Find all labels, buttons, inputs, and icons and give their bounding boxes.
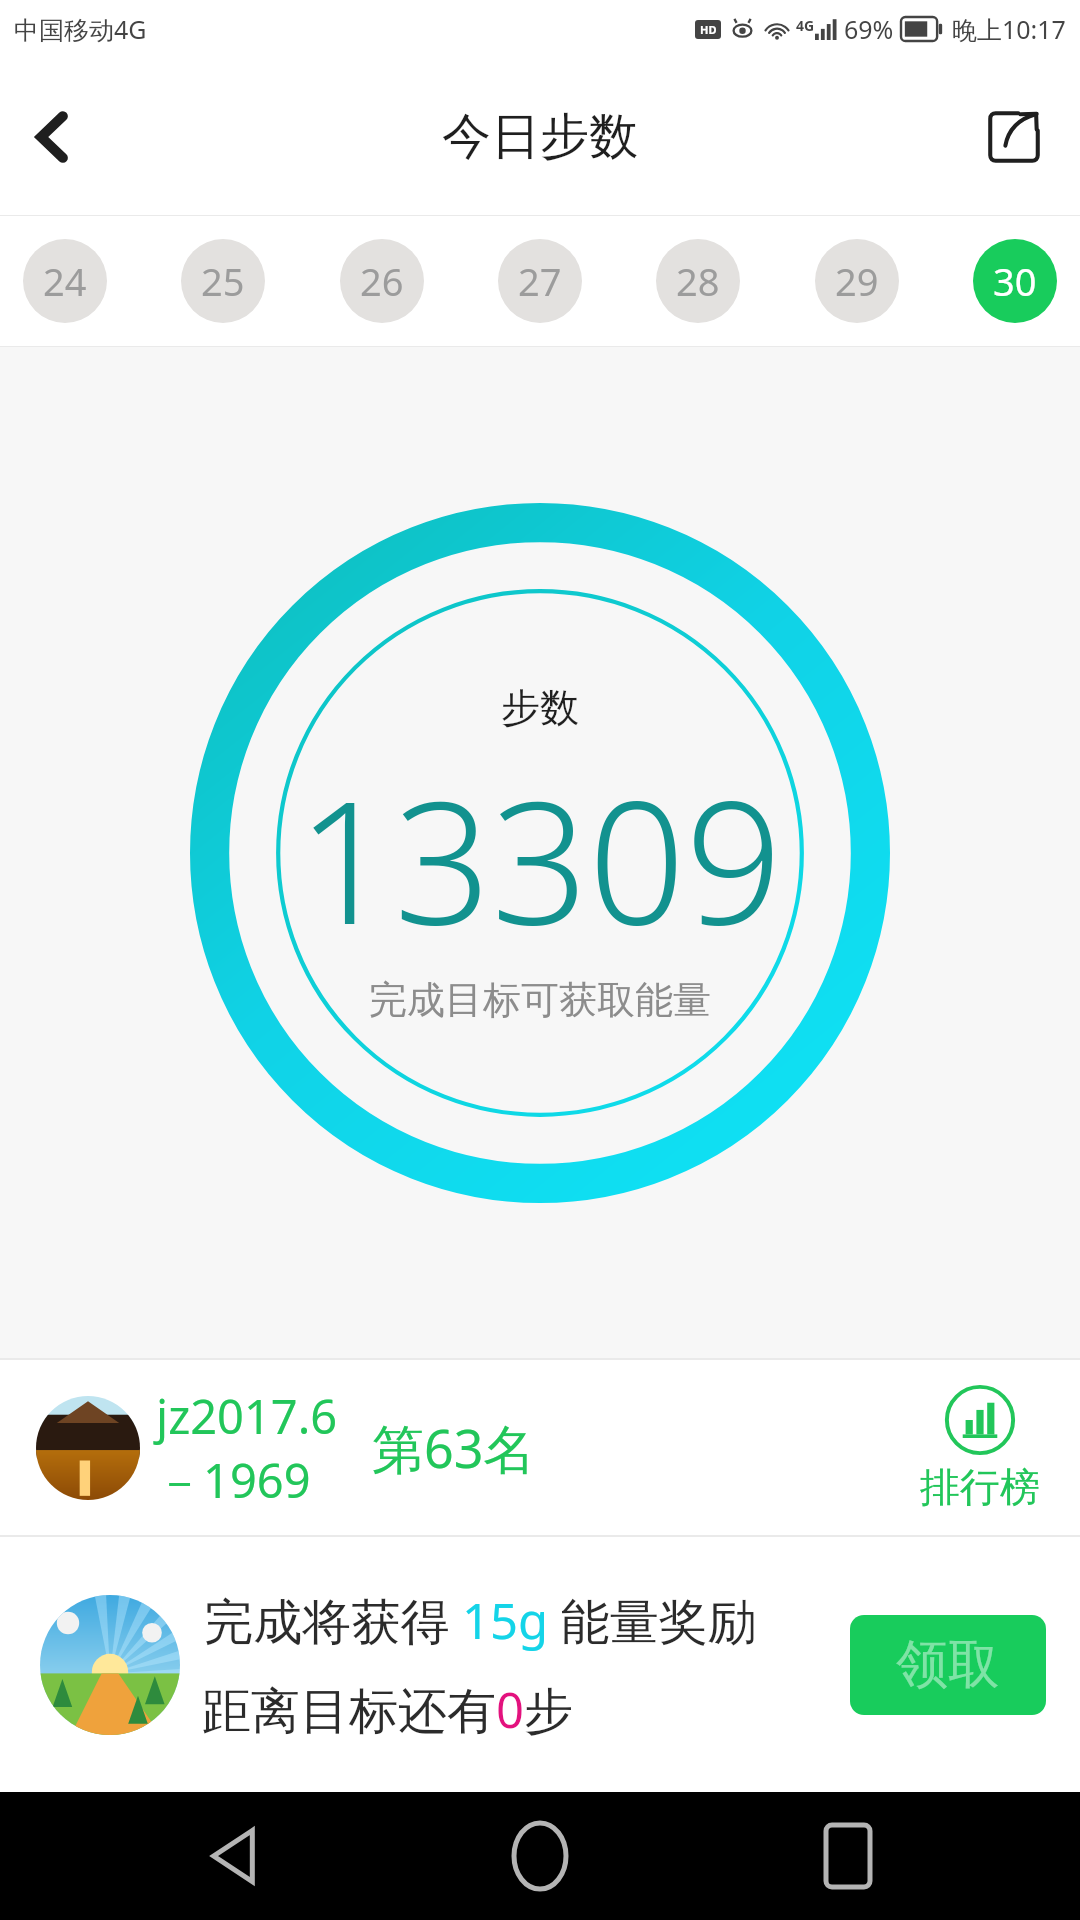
button[interactable]: 排行榜 (920, 1384, 1040, 1512)
staticText: 30 (993, 255, 1037, 307)
button[interactable]: 24 (23, 239, 107, 323)
button[interactable]: 29 (815, 239, 899, 323)
staticText: 29 (835, 255, 879, 307)
staticText: 27 (518, 255, 562, 307)
staticText: 28 (676, 255, 720, 307)
button[interactable]: Back (0, 85, 104, 189)
staticText: 步数 (501, 683, 579, 732)
staticText: 领取 (896, 1632, 1000, 1698)
staticText: 25 (201, 255, 245, 307)
staticText: 距离目标还有0步 (202, 1676, 574, 1743)
staticText: 中国移动4G (14, 12, 147, 46)
button[interactable]: 25 (181, 239, 265, 323)
button[interactable]: Share (966, 89, 1062, 185)
staticText: 今日步数 (442, 106, 638, 168)
staticText: 24 (43, 255, 87, 307)
button[interactable]: 27 (498, 239, 582, 323)
staticText: 排行榜 (920, 1462, 1040, 1512)
button[interactable]: Back (158, 1792, 308, 1920)
staticText: 4G (796, 16, 815, 35)
button[interactable]: Recents (773, 1792, 923, 1920)
staticText: 完成目标可获取能量 (369, 976, 711, 1024)
staticText: 13309 (297, 742, 783, 974)
button[interactable]: 领取 (850, 1615, 1046, 1715)
button[interactable]: 26 (340, 239, 424, 323)
button[interactable]: 30 (973, 239, 1057, 323)
staticText: 完成将获得 15g 能量奖励 (202, 1587, 759, 1654)
button[interactable]: Home (465, 1792, 615, 1920)
staticText: 第63名 (372, 1412, 536, 1483)
staticText: 26 (360, 255, 404, 307)
staticText: 69% (844, 12, 894, 46)
staticText: HD (700, 22, 717, 37)
button[interactable]: 28 (656, 239, 740, 323)
staticText: jz2017.6 (156, 1384, 338, 1448)
staticText: －1969 (156, 1448, 311, 1512)
staticText: 晚上10:17 (952, 12, 1066, 46)
